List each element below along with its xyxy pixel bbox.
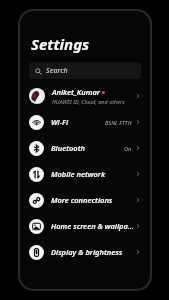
button[interactable]: Home screen & wallpaper [20, 213, 150, 239]
button[interactable]: Display & brightness [20, 239, 150, 265]
staticText: HUAWEI ID, Cloud, and others [52, 98, 125, 105]
button[interactable]: Mobile network [20, 161, 150, 187]
other: Home screen & wallpaper [29, 219, 44, 234]
staticText: More connections [51, 195, 135, 205]
staticText: Wi-Fi [51, 117, 105, 127]
other: Bluetooth [29, 141, 44, 156]
staticText: Home screen & wallpaper [51, 221, 135, 231]
button[interactable]: Search [29, 62, 141, 79]
button[interactable]: Wi-Fi [20, 109, 150, 135]
staticText: Mobile network [51, 169, 135, 179]
staticText: BSNL FTTH [105, 119, 132, 126]
other: More connections [29, 193, 44, 208]
button[interactable]: More connections [20, 187, 150, 213]
staticText: Aniket_Kumar [52, 87, 100, 97]
staticText: Display & brightness [51, 247, 135, 257]
button[interactable]: Aniket_Kumar [20, 83, 150, 109]
other: Display & brightness [29, 245, 44, 260]
staticText: Settings [31, 34, 90, 54]
other: Mobile network [29, 167, 44, 182]
staticText: Bluetooth [51, 143, 124, 153]
staticText: On [124, 145, 132, 152]
other: Wi-Fi [29, 115, 44, 130]
staticText: Search [46, 66, 68, 76]
button[interactable]: Bluetooth [20, 135, 150, 161]
